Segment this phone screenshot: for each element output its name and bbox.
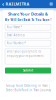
button[interactable]: Email Address xyxy=(5,32,51,38)
staticText: Your Number* xyxy=(7,41,26,45)
button[interactable]: Menu xyxy=(50,2,53,6)
staticText: Submit xyxy=(23,69,33,72)
button[interactable]: Your Name* xyxy=(5,24,51,30)
button[interactable]: Submit xyxy=(5,68,51,74)
staticText: Your Name* xyxy=(7,25,22,29)
staticText: We Will Get Back To You Soon ! xyxy=(4,18,51,22)
staticText: Order Bulk Food in Train Journey xyxy=(5,88,50,92)
button[interactable]: Your Number* xyxy=(5,40,51,46)
staticText: Group Food Ordering in Train | xyxy=(6,84,50,87)
staticText: Enter your query here to xyxy=(7,50,42,53)
staticText: Share Your Details & xyxy=(8,11,48,17)
staticText: Email Address xyxy=(7,33,25,37)
staticText: RAILMITRA xyxy=(5,1,29,7)
staticText: enquiry your requirement xyxy=(7,54,44,58)
staticText: ‹ xyxy=(2,0,4,8)
button[interactable]: Back xyxy=(1,0,5,8)
